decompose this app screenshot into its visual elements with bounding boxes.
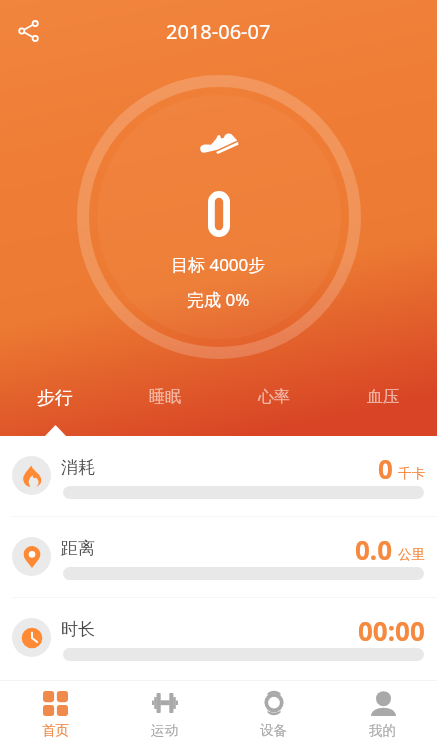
button[interactable]: 步行 — [0, 380, 110, 436]
staticText: 千卡 — [398, 465, 425, 482]
staticText: 我的 — [369, 722, 396, 739]
staticText: 心率 — [258, 387, 290, 407]
button[interactable]: 我的 — [328, 681, 437, 748]
button[interactable]: 时长 — [0, 598, 437, 678]
staticText: 目标 4000步 — [171, 253, 266, 276]
staticText: 睡眠 — [149, 387, 181, 407]
staticText: 0 — [378, 451, 393, 486]
staticText: 完成 0% — [187, 288, 250, 311]
staticText: 时长 — [61, 619, 95, 640]
button[interactable]: 睡眠 — [110, 380, 219, 436]
button[interactable]: 运动 — [110, 681, 219, 748]
staticText: 消耗 — [61, 457, 95, 478]
staticText: 0.0 — [355, 532, 393, 567]
button[interactable]: 设备 — [219, 681, 328, 748]
button[interactable]: 消耗 — [0, 436, 437, 516]
staticText: 距离 — [61, 538, 95, 559]
staticText: 公里 — [398, 546, 425, 563]
staticText: 血压 — [367, 387, 399, 407]
button[interactable]: 首页 — [0, 681, 110, 748]
button[interactable]: 血压 — [328, 380, 437, 436]
staticText: 首页 — [42, 722, 69, 739]
button[interactable]: 距离 — [0, 517, 437, 597]
staticText: 运动 — [151, 722, 178, 739]
button[interactable]: 心率 — [219, 380, 328, 436]
button[interactable]: Share — [8, 10, 50, 52]
staticText: 2018-06-07 — [166, 18, 271, 45]
staticText: 步行 — [37, 387, 73, 410]
staticText: 设备 — [260, 722, 287, 739]
staticText: 00:00 — [358, 613, 425, 648]
